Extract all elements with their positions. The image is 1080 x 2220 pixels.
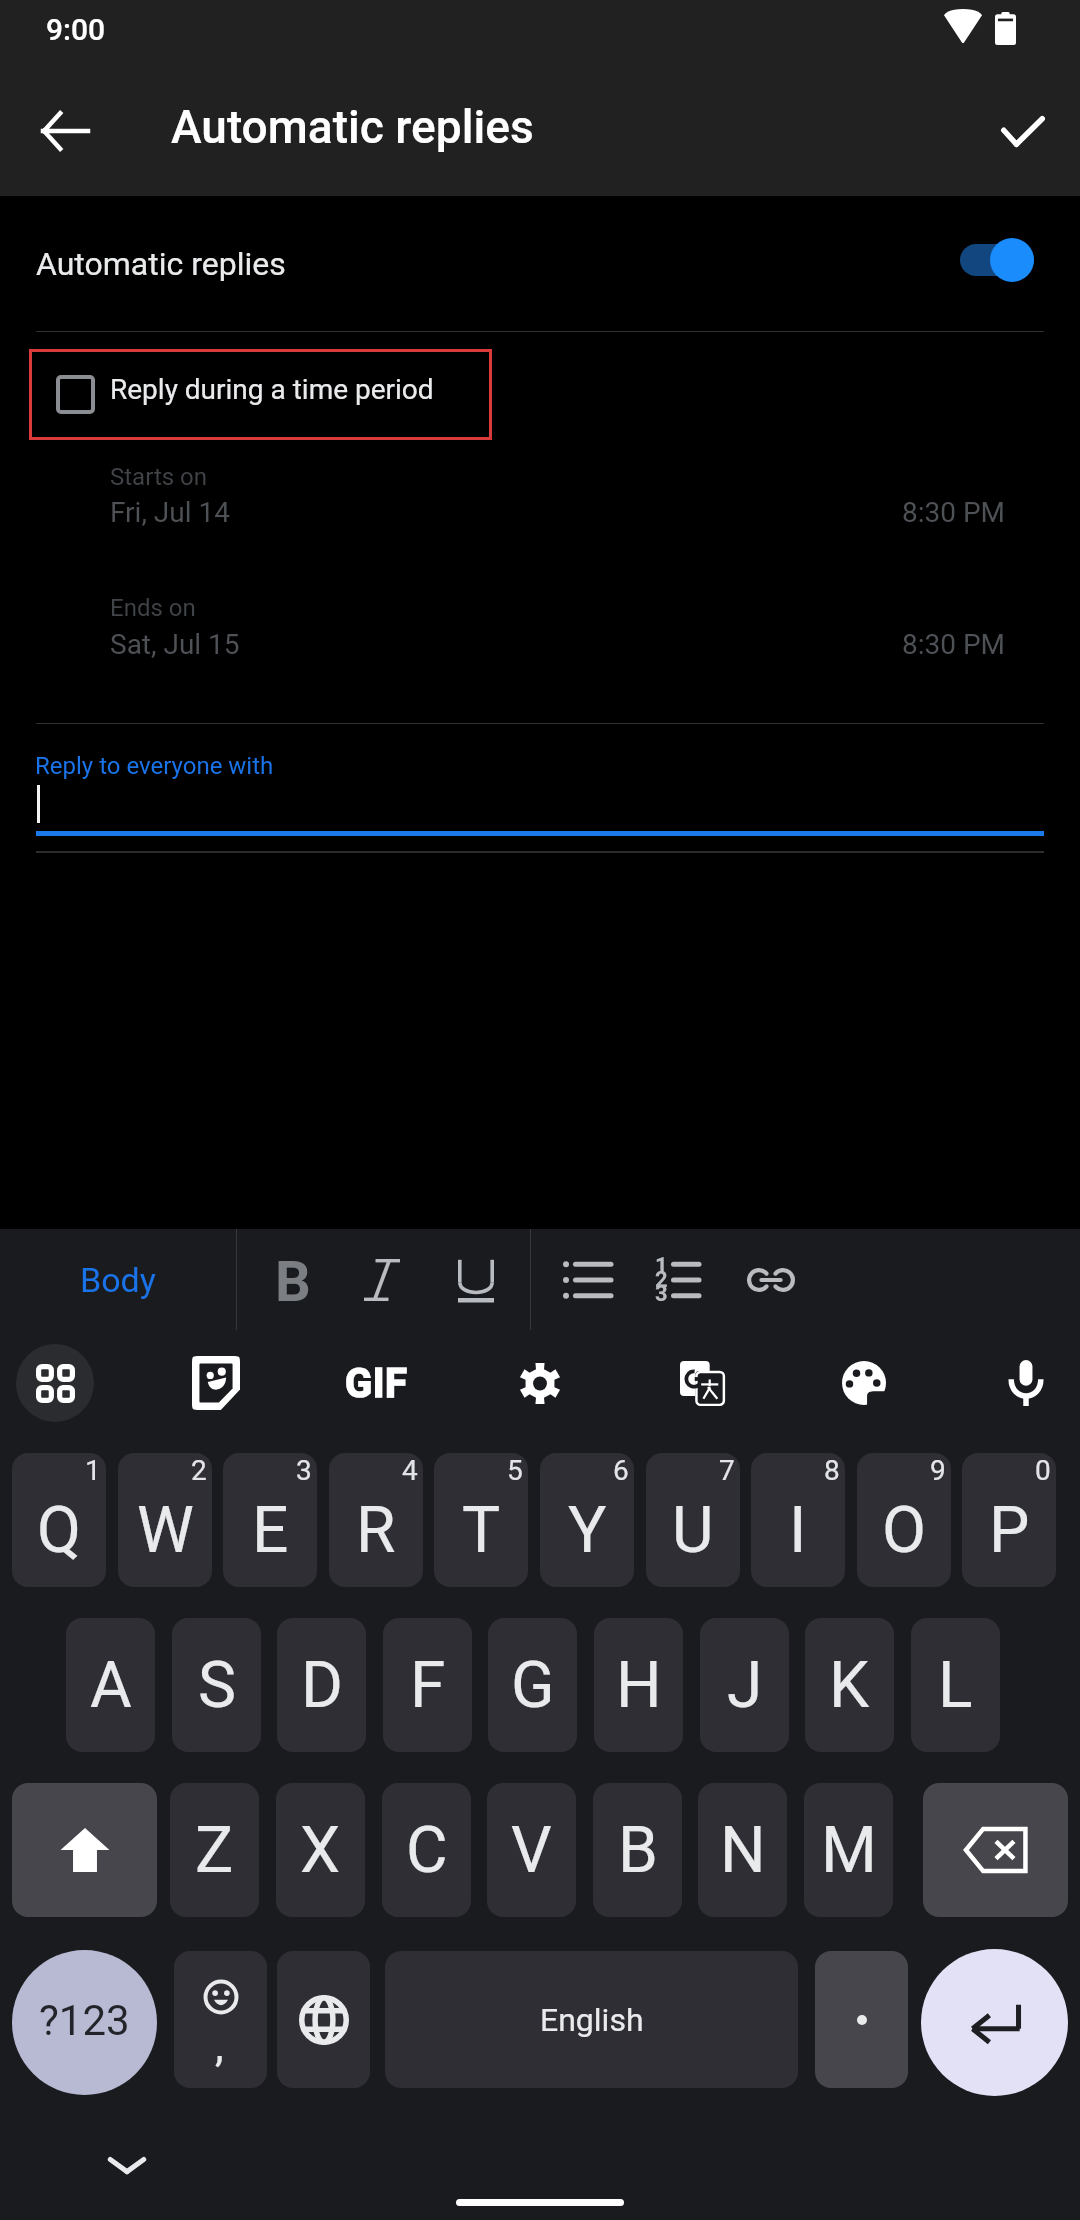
button[interactable]: H — [594, 1618, 683, 1752]
staticText: B — [275, 1249, 311, 1315]
button[interactable]: 2 — [118, 1453, 212, 1587]
button[interactable]: Body — [0, 1229, 236, 1330]
staticText: 6 — [613, 1454, 629, 1487]
staticText: , — [215, 2020, 224, 2072]
staticText: D — [301, 1648, 343, 1723]
button[interactable]: Insert link — [724, 1229, 817, 1330]
button[interactable]: Shift — [12, 1783, 157, 1917]
staticText: Automatic replies — [36, 245, 286, 283]
staticText: ?123 — [39, 1996, 130, 2045]
staticText: U — [672, 1493, 714, 1568]
staticText: Fri, Jul 14 — [110, 496, 230, 529]
staticText: O — [882, 1493, 927, 1568]
staticText: Reply to everyone with — [35, 752, 274, 780]
button[interactable]: 9 — [857, 1453, 951, 1587]
staticText: Starts on — [110, 463, 208, 491]
staticText: I — [789, 1493, 807, 1568]
button[interactable]: M — [804, 1783, 893, 1917]
staticText: L — [938, 1648, 973, 1723]
button[interactable]: X — [276, 1783, 365, 1917]
button[interactable]: Italic — [335, 1229, 428, 1330]
staticText: Ends on — [110, 594, 196, 622]
button[interactable]: Change language — [277, 1951, 370, 2088]
button[interactable]: V — [487, 1783, 576, 1917]
button[interactable]: Save — [978, 86, 1068, 176]
button[interactable]: ?123 — [12, 1950, 157, 2095]
button[interactable]: N — [698, 1783, 787, 1917]
button[interactable]: Toolbar — [16, 1344, 94, 1422]
button[interactable]: 5 — [434, 1453, 528, 1587]
button[interactable]: Automatic replies — [0, 196, 1080, 331]
button[interactable]: 3 — [223, 1453, 317, 1587]
staticText: E — [252, 1493, 289, 1568]
staticText: Body — [80, 1260, 156, 1300]
button[interactable]: Reply to everyone with — [35, 740, 1044, 840]
button[interactable]: 0 — [962, 1453, 1056, 1587]
button[interactable]: Translate — [658, 1339, 746, 1427]
staticText: Y — [568, 1493, 607, 1568]
staticText: 1 — [655, 1253, 668, 1279]
staticText: T — [462, 1493, 501, 1568]
staticText: W — [137, 1493, 194, 1568]
staticText: H — [616, 1648, 662, 1723]
staticText: K — [829, 1648, 870, 1723]
staticText: G — [511, 1648, 555, 1723]
staticText: 9 — [930, 1454, 946, 1487]
button[interactable]: Emoji — [174, 1951, 267, 2088]
button[interactable]: C — [382, 1783, 471, 1917]
button[interactable]: Bold — [246, 1229, 339, 1330]
button[interactable]: 8 — [751, 1453, 845, 1587]
staticText: 7 — [719, 1454, 735, 1487]
button[interactable]: J — [700, 1618, 789, 1752]
staticText: F — [410, 1648, 446, 1723]
button[interactable]: Period — [815, 1951, 908, 2088]
staticText: Z — [195, 1813, 234, 1888]
staticText: 8:30 PM — [902, 496, 1006, 529]
button[interactable]: 6 — [540, 1453, 634, 1587]
button[interactable]: English — [385, 1951, 798, 2088]
staticText: B — [618, 1813, 658, 1888]
staticText: 2 — [655, 1267, 668, 1293]
staticText: 8 — [824, 1454, 840, 1487]
button[interactable]: A — [66, 1618, 155, 1752]
staticText: A — [90, 1648, 132, 1723]
staticText: 3 — [296, 1454, 312, 1487]
button[interactable]: Back — [20, 86, 110, 176]
staticText: 3 — [655, 1281, 668, 1307]
button[interactable]: 1 — [12, 1453, 106, 1587]
button[interactable]: K — [805, 1618, 894, 1752]
button[interactable]: Backspace — [923, 1783, 1068, 1917]
button[interactable]: GIF — [332, 1339, 420, 1427]
staticText: 1 — [85, 1454, 101, 1487]
button[interactable]: G — [488, 1618, 577, 1752]
staticText: Sat, Jul 15 — [110, 628, 240, 661]
button[interactable]: B — [593, 1783, 682, 1917]
staticText: 4 — [402, 1454, 418, 1487]
button[interactable]: Themes — [820, 1339, 908, 1427]
button[interactable]: Settings — [496, 1339, 584, 1427]
button[interactable]: Ends on — [90, 586, 1044, 676]
button[interactable]: L — [911, 1618, 1000, 1752]
button[interactable]: F — [383, 1618, 472, 1752]
button[interactable]: Z — [170, 1783, 259, 1917]
button[interactable]: Starts on — [90, 455, 1044, 545]
button[interactable]: Hide keyboard — [92, 2130, 162, 2200]
button[interactable]: Numbered list — [630, 1229, 723, 1330]
button[interactable]: Underline — [429, 1229, 522, 1330]
staticText: R — [356, 1493, 396, 1568]
button[interactable]: 4 — [329, 1453, 423, 1587]
staticText: M — [821, 1813, 877, 1888]
staticText: Automatic replies — [171, 100, 534, 154]
button[interactable]: 7 — [646, 1453, 740, 1587]
button[interactable]: Bulleted list — [540, 1229, 633, 1330]
staticText: 9:00 — [46, 12, 106, 47]
staticText: GIF — [345, 1360, 408, 1407]
button[interactable]: D — [277, 1618, 366, 1752]
staticText: S — [198, 1648, 236, 1723]
button[interactable]: Stickers — [172, 1339, 260, 1427]
button[interactable]: Enter — [921, 1949, 1068, 2096]
button[interactable]: S — [172, 1618, 261, 1752]
button[interactable]: Voice input — [982, 1339, 1070, 1427]
button[interactable]: Reply during a time period — [29, 349, 492, 440]
staticText: 2 — [191, 1454, 207, 1487]
